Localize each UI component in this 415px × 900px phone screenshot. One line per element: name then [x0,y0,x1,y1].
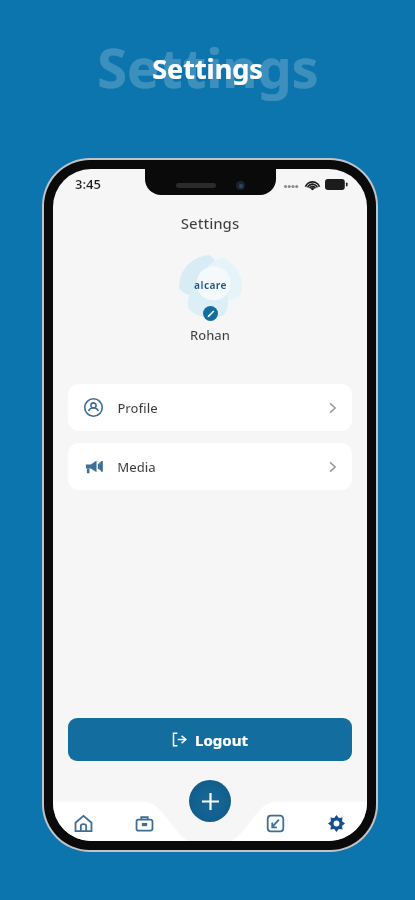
button[interactable]: Edit profile picture [203,306,218,321]
button[interactable]: Reports [245,806,306,840]
staticText: Settings [53,213,367,233]
button[interactable]: Home [53,806,114,840]
staticText: Rohan [190,326,230,344]
staticText: Settings [152,50,263,87]
staticText: alcare [194,278,227,292]
staticText: Settings [97,30,319,104]
button[interactable]: Media [68,443,352,490]
staticText: Media [117,458,156,476]
button[interactable]: Logout [68,718,352,761]
button[interactable]: Jobs [114,806,175,840]
button[interactable]: Profile [68,384,352,431]
staticText: Profile [117,399,158,417]
staticText: 3:45 [75,175,101,193]
button[interactable]: Add [189,780,231,822]
button[interactable]: Settings [306,806,367,840]
staticText: Logout [195,730,248,750]
